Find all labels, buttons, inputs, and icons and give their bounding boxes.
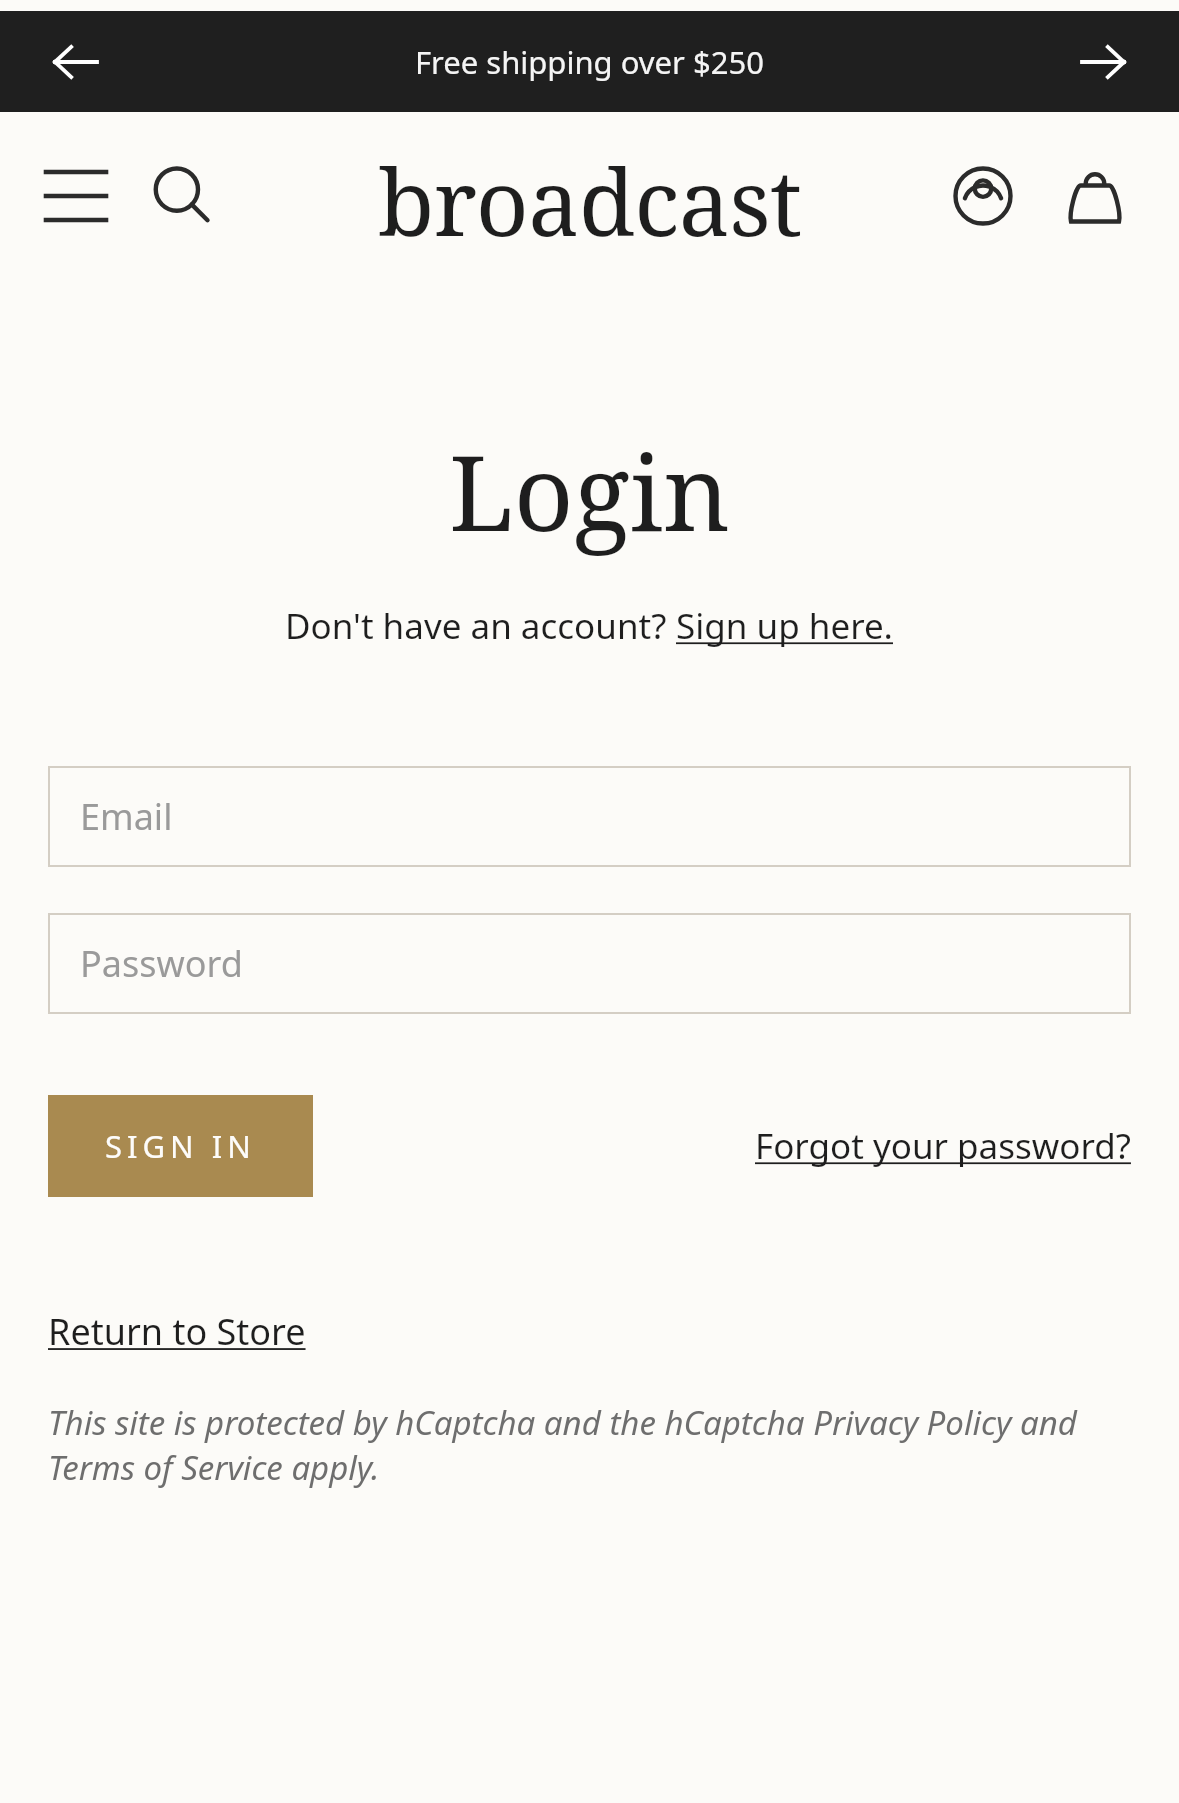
button[interactable]: Previous announcement xyxy=(34,20,118,104)
button[interactable]: Email xyxy=(48,766,1131,867)
button[interactable]: SIGN IN xyxy=(48,1095,313,1197)
button[interactable]: Forgot your password? xyxy=(755,1122,1131,1170)
button[interactable]: Account xyxy=(937,150,1029,242)
staticText: This site is protected by hCaptcha and t… xyxy=(48,1400,1131,1490)
staticText: Login xyxy=(48,420,1131,562)
staticText: Free shipping over $250 xyxy=(415,41,764,83)
button[interactable]: Next announcement xyxy=(1061,20,1145,104)
staticText: Forgot your password? xyxy=(755,1122,1131,1170)
staticText: Return to Store xyxy=(48,1307,306,1356)
staticText: Don't have an account? xyxy=(285,602,676,650)
button[interactable]: Password xyxy=(48,913,1131,1014)
staticText: SIGN IN xyxy=(105,1125,256,1167)
button[interactable]: Cart xyxy=(1049,150,1141,242)
button[interactable]: Sign up here. xyxy=(676,602,894,650)
button[interactable]: Menu xyxy=(28,148,124,244)
staticText: Password xyxy=(80,939,243,988)
button[interactable]: Search xyxy=(136,150,228,242)
staticText: Email xyxy=(80,792,173,841)
staticText: Sign up here. xyxy=(676,602,894,650)
button[interactable]: broadcast xyxy=(378,138,802,263)
button[interactable]: Return to Store xyxy=(48,1307,306,1356)
